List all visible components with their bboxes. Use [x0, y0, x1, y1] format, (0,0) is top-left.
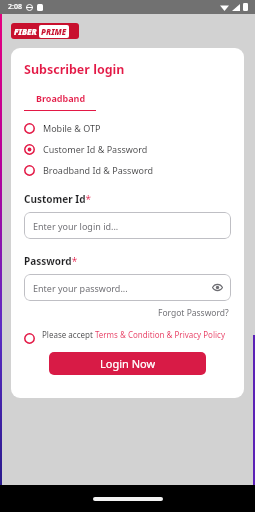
staticText: Enter your password...: [33, 282, 128, 294]
staticText: Subscriber login: [24, 61, 125, 78]
staticText: FIBER: [14, 26, 37, 37]
button[interactable]: Customer Id & Password: [24, 143, 231, 155]
button[interactable]: Enter your login id...: [24, 212, 231, 239]
staticText: Broadband Id & Password: [43, 164, 153, 176]
button[interactable]: Enter your password...: [24, 274, 231, 301]
button[interactable]: Broadband Id & Password: [24, 164, 231, 176]
button[interactable]: Please accept Terms & Condition & Privac…: [24, 329, 231, 340]
staticText: Broadband: [36, 92, 86, 104]
staticText: 2:08: [8, 2, 22, 12]
button[interactable]: Broadband: [24, 92, 98, 111]
staticText: PRIME: [41, 26, 67, 37]
button[interactable]: Fiber Prime logo: [11, 23, 79, 39]
staticText: Please accept Terms & Condition & Privac…: [42, 329, 225, 340]
button[interactable]: Login Now: [49, 352, 206, 375]
staticText: Customer Id & Password: [43, 143, 148, 155]
staticText: Enter your login id...: [33, 220, 119, 232]
staticText: Login Now: [100, 356, 156, 371]
button[interactable]: Mobile & OTP: [24, 122, 231, 134]
staticText: Password*: [24, 254, 78, 268]
button[interactable]: Show password: [211, 281, 224, 294]
staticText: Customer Id*: [24, 192, 92, 206]
button[interactable]: Forgot Password?: [156, 305, 231, 321]
staticText: Mobile & OTP: [43, 122, 101, 134]
